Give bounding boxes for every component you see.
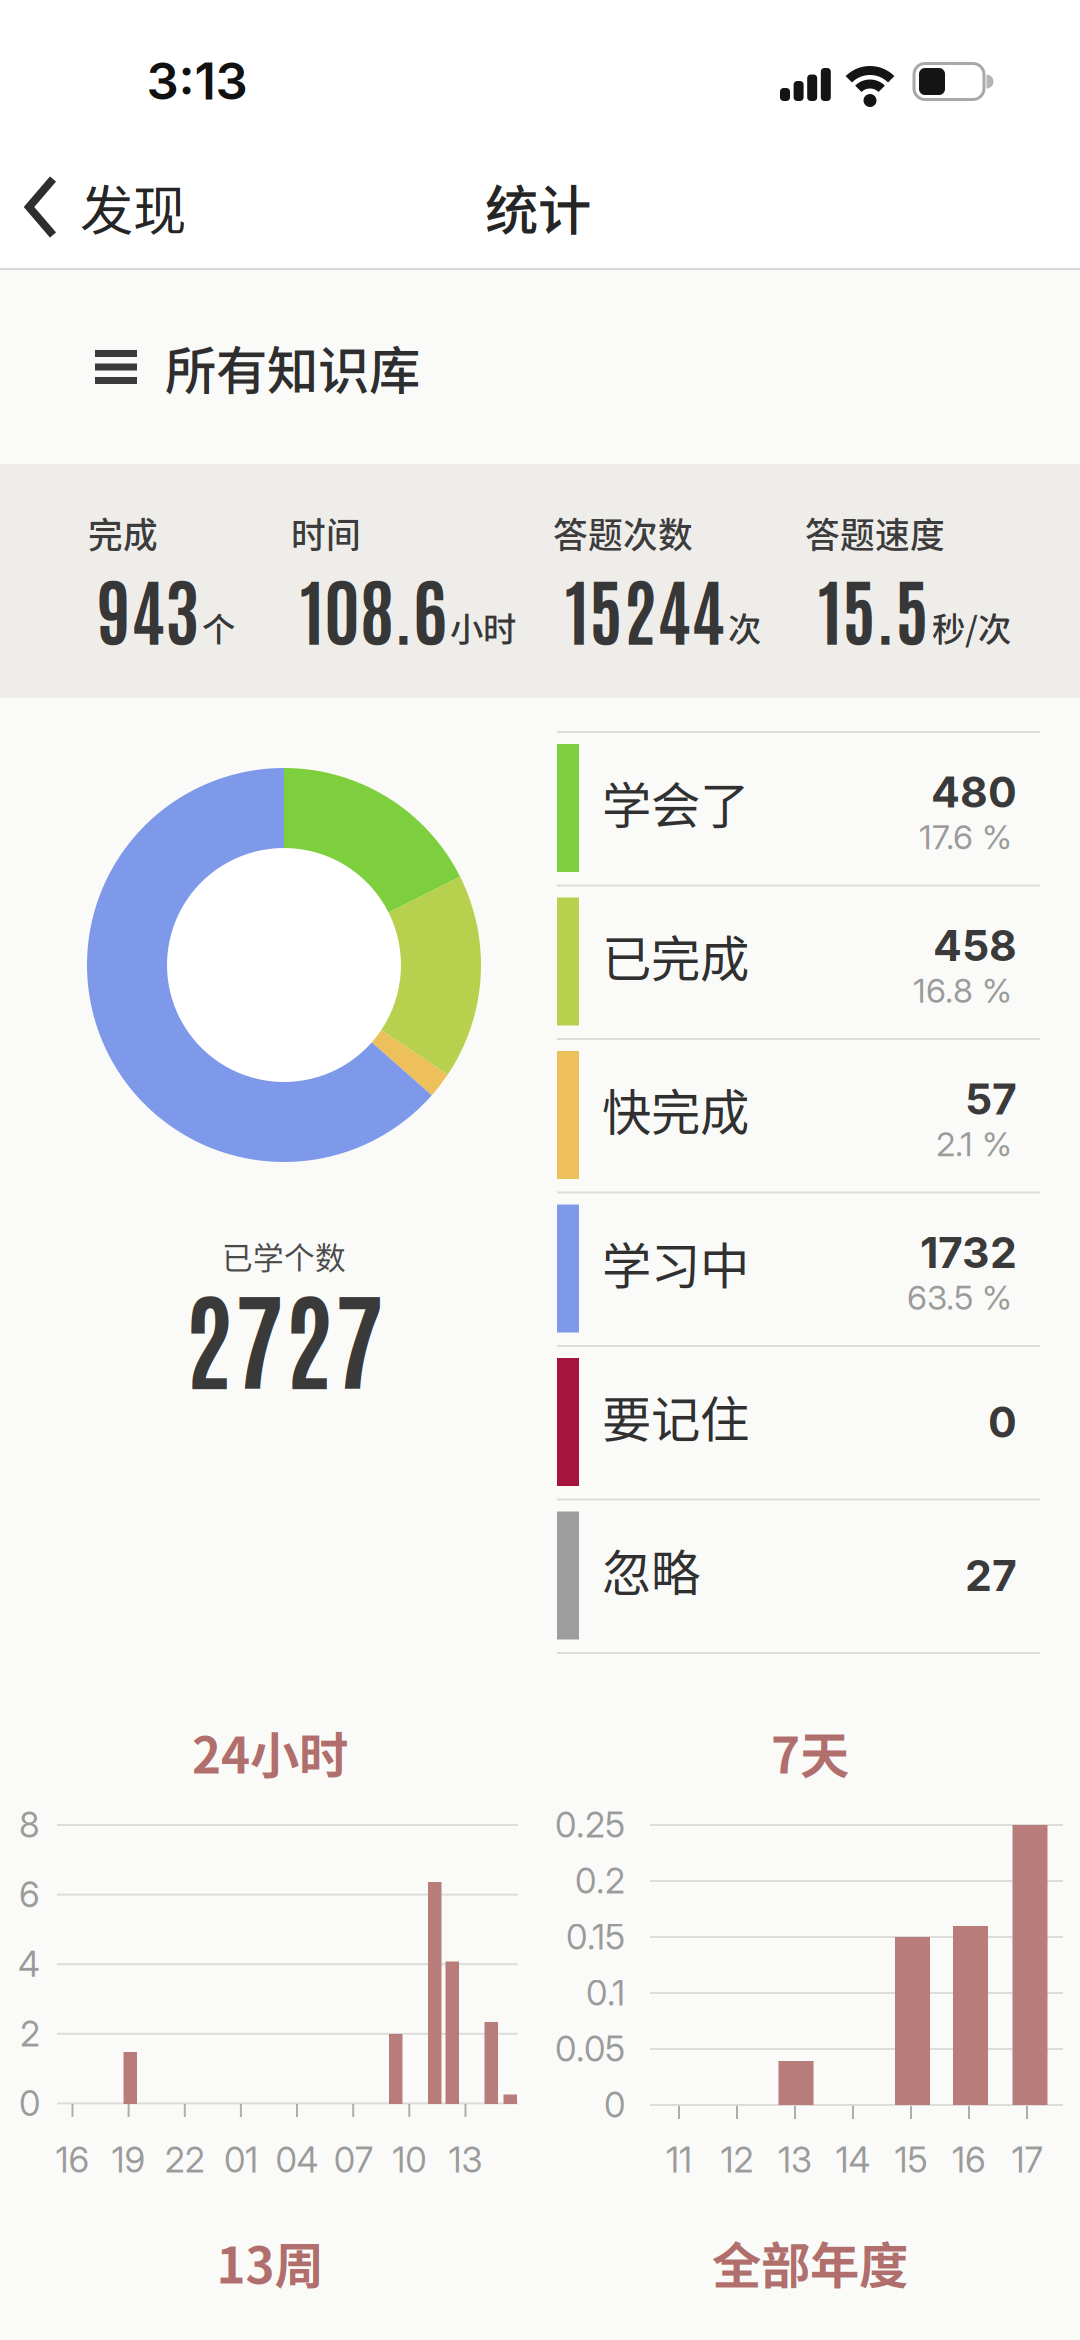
staticText: 07	[334, 2139, 373, 2181]
staticText: 57	[965, 1073, 1017, 1125]
staticText: 2	[20, 2013, 40, 2055]
staticText: 答题速度	[805, 508, 945, 558]
staticText: 时间	[291, 508, 361, 558]
staticText: 0.15	[566, 1916, 625, 1958]
staticText: 要记住	[602, 1380, 749, 1452]
staticText: 快完成	[602, 1073, 749, 1145]
staticText: 0	[988, 1396, 1017, 1448]
staticText: 27	[965, 1550, 1017, 1601]
staticText: 108.6	[300, 560, 447, 655]
staticText: 04	[275, 2139, 318, 2181]
staticText: 0.05	[555, 2028, 625, 2070]
staticText: 15	[894, 2139, 927, 2181]
staticText: 19	[112, 2139, 146, 2181]
staticText: 15.5	[818, 560, 929, 655]
staticText: 12	[720, 2139, 753, 2181]
staticText: 3:13	[146, 50, 247, 112]
staticText: 8	[19, 1804, 40, 1846]
staticText: 10	[392, 2139, 426, 2181]
staticText: 458	[933, 920, 1017, 971]
staticText: 0.1	[586, 1972, 625, 2014]
staticText: 次	[728, 603, 761, 651]
staticText: 0.2	[575, 1860, 625, 1902]
staticText: 小时	[450, 603, 516, 651]
staticText: 7天	[771, 1716, 849, 1788]
staticText: 1732	[920, 1227, 1017, 1278]
staticText: 学会了	[602, 766, 749, 838]
staticText: 16	[55, 2139, 89, 2181]
staticText: 2.1 %	[936, 1124, 1012, 1164]
staticText: 13周	[216, 2226, 323, 2298]
staticText: 忽略	[602, 1534, 700, 1605]
staticText: 已学个数	[222, 1234, 346, 1278]
staticText: 13	[778, 2139, 812, 2181]
staticText: 0	[19, 2082, 40, 2124]
staticText: 6	[19, 1874, 40, 1915]
staticText: 已完成	[602, 920, 749, 991]
staticText: 11	[666, 2139, 692, 2181]
staticText: 63.5 %	[907, 1277, 1012, 1318]
staticText: 全部年度	[712, 2226, 908, 2298]
staticText: 学习中	[602, 1227, 749, 1298]
staticText: 2727	[184, 1265, 384, 1403]
staticText: 01	[224, 2139, 258, 2181]
button[interactable]: 所有知识库	[0, 272, 1080, 462]
button[interactable]: 发现	[0, 151, 260, 263]
staticText: 15244	[565, 560, 725, 655]
staticText: 0	[604, 2084, 625, 2126]
staticText: 17	[1011, 2139, 1042, 2181]
staticText: 统计	[485, 168, 591, 246]
staticText: 14	[835, 2139, 870, 2181]
staticText: 0.25	[555, 1804, 625, 1846]
staticText: 22	[165, 2139, 205, 2181]
staticText: 16.8 %	[913, 970, 1012, 1011]
staticText: 答题次数	[553, 508, 693, 558]
staticText: 17.6 %	[919, 817, 1012, 857]
staticText: 所有知识库	[165, 330, 420, 404]
staticText: 完成	[88, 508, 158, 558]
staticText: 秒/次	[932, 603, 1011, 651]
staticText: 943	[97, 560, 199, 655]
staticText: 480	[931, 766, 1017, 818]
staticText: 个	[202, 603, 235, 651]
staticText: 24小时	[192, 1716, 348, 1788]
staticText: 13	[448, 2139, 482, 2181]
staticText: 4	[18, 1943, 40, 1985]
staticText: 16	[952, 2139, 986, 2181]
staticText: 发现	[80, 168, 186, 246]
